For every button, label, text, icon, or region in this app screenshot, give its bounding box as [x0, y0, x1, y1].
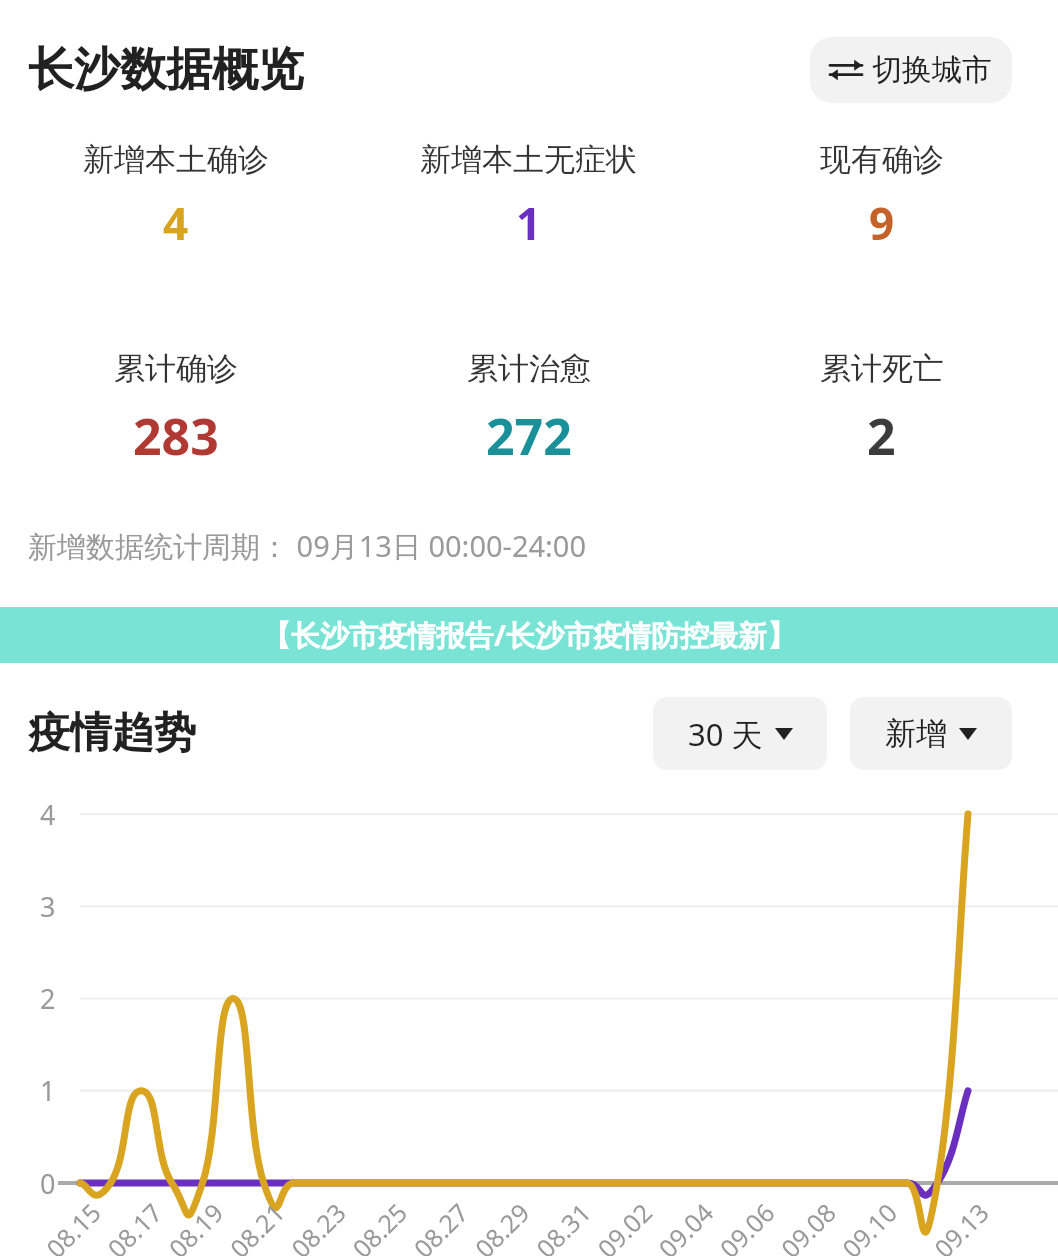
button[interactable]: 累计确诊	[0, 349, 352, 470]
staticText: 2	[867, 402, 896, 470]
staticText: 长沙数据概览	[28, 41, 304, 99]
staticText: 现有确诊	[820, 140, 944, 179]
button[interactable]: 累计治愈	[352, 349, 705, 470]
staticText: 累计死亡	[820, 349, 944, 388]
staticText: 1	[516, 193, 542, 253]
staticText: 切换城市	[872, 51, 992, 89]
staticText: 9	[869, 193, 895, 253]
button[interactable]: 累计死亡	[705, 349, 1058, 470]
staticText: 272	[486, 402, 572, 470]
button[interactable]: 现有确诊	[705, 140, 1058, 253]
other: Switch city	[830, 57, 862, 83]
button[interactable]: Switch city	[810, 37, 1012, 103]
staticText: 新增本土无症状	[420, 140, 637, 179]
button[interactable]: 新增本土无症状	[352, 140, 705, 253]
button[interactable]: 新增本土确诊	[0, 140, 352, 253]
staticText: 新增本土确诊	[83, 140, 269, 179]
staticText: 283	[133, 402, 219, 470]
button[interactable]: 新增	[850, 697, 1012, 770]
staticText: 疫情趋势	[28, 707, 196, 760]
staticText: 累计确诊	[114, 349, 238, 388]
button[interactable]: 30 天	[653, 697, 827, 770]
staticText: 30 天	[688, 713, 763, 755]
staticText: 【长沙市疫情报告/长沙市疫情防控最新】	[262, 615, 797, 655]
staticText: 新增	[885, 714, 947, 753]
staticText: 4	[163, 193, 189, 253]
staticText: 新增数据统计周期： 09月13日 00:00-24:00	[28, 526, 587, 566]
staticText: 累计治愈	[467, 349, 591, 388]
